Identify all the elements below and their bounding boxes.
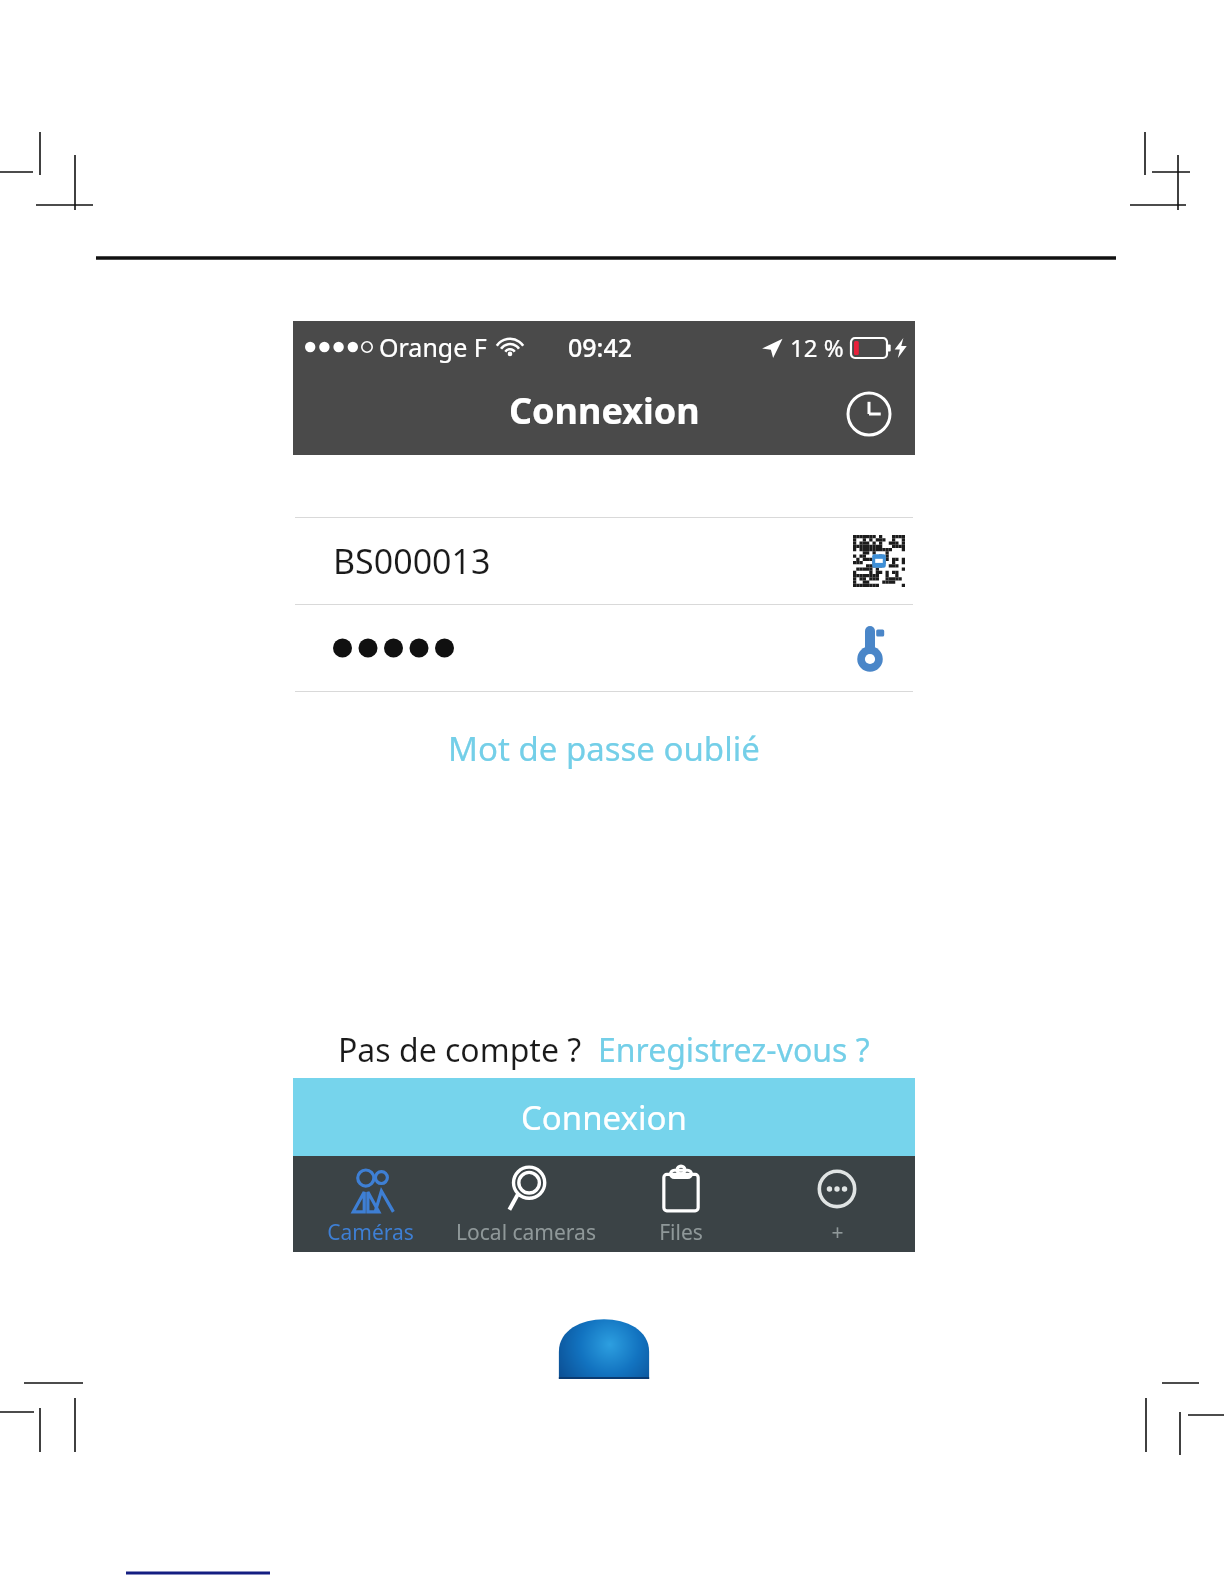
staticText: Connexion bbox=[509, 386, 700, 435]
button[interactable]: Scan QR code bbox=[851, 533, 907, 589]
button[interactable]: BS000013 bbox=[293, 518, 915, 604]
staticText: + bbox=[831, 1218, 844, 1247]
button[interactable]: Caméras distantes bbox=[293, 1156, 448, 1252]
button[interactable]: + bbox=[759, 1156, 915, 1252]
button[interactable]: History bbox=[843, 388, 895, 440]
staticText: Pas de compte ? bbox=[338, 1028, 582, 1072]
button[interactable]: Local cameras bbox=[448, 1156, 603, 1252]
button[interactable]: Show password bbox=[845, 619, 903, 677]
button[interactable]: Show password bbox=[293, 605, 915, 691]
staticText: Local cameras bbox=[456, 1218, 596, 1247]
button[interactable]: Mot de passe oublié bbox=[293, 722, 915, 774]
staticText: Connexion bbox=[521, 1095, 687, 1140]
staticText: Caméras distantes bbox=[293, 1218, 448, 1252]
button[interactable]: Connexion bbox=[293, 1078, 915, 1156]
staticText: Files bbox=[659, 1218, 703, 1247]
staticText: 09:42 bbox=[568, 330, 633, 364]
button[interactable]: Files bbox=[603, 1156, 759, 1252]
staticText: Enregistrez-vous ? bbox=[598, 1028, 870, 1072]
staticText: BS000013 bbox=[333, 538, 491, 584]
button[interactable]: Enregistrez-vous ? bbox=[598, 1028, 870, 1072]
staticText: Orange F bbox=[379, 330, 487, 364]
staticText: 12 % bbox=[790, 331, 844, 364]
staticText: Mot de passe oublié bbox=[448, 726, 760, 771]
